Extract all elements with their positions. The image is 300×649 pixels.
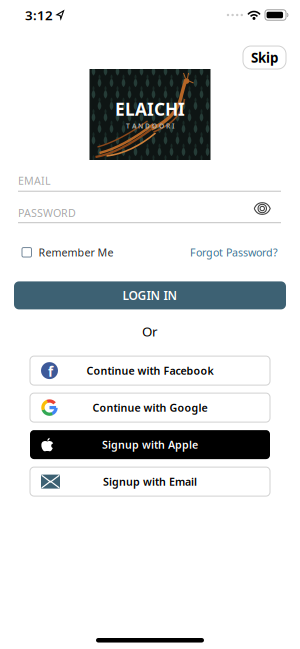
button[interactable]: Signup with Apple [30,430,270,459]
staticText: Or [142,322,158,340]
staticText: Remember Me [38,245,113,259]
button[interactable]: Continue with Facebook [30,356,270,385]
button[interactable]: Show password [253,207,271,220]
button[interactable]: Forgot Password? [190,245,278,259]
button[interactable]: Remember Me [22,245,113,259]
button[interactable]: LOGIN IN [14,281,286,309]
staticText: Continue with Facebook [86,363,213,378]
staticText: Forgot Password? [190,245,278,259]
staticText: Signup with Apple [102,437,198,452]
staticText: EMAIL [18,173,51,188]
staticText: Continue with Google [92,400,207,415]
staticText: T A N D O O R I [126,122,174,130]
staticText: 3:12 [25,6,53,24]
staticText: Skip [251,49,278,66]
staticText: f [48,363,53,380]
staticText: LOGIN IN [122,287,177,303]
button[interactable]: Continue with Google [30,393,270,422]
button[interactable]: Skip [243,46,286,69]
staticText: ELAICHI [115,98,185,121]
staticText: Signup with Email [103,474,197,489]
button[interactable]: Signup with Email [30,467,270,496]
staticText: PASSWORD [18,206,76,220]
